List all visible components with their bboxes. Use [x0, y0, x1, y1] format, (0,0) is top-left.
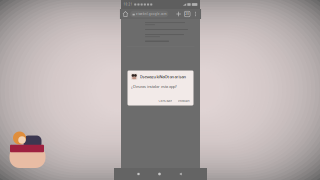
button[interactable]: INSTALAR — [178, 99, 190, 102]
staticText: OsewazukiNaOtonarisan — [139, 74, 186, 79]
staticText: INSTALAR — [178, 99, 190, 102]
button[interactable]: Home — [153, 168, 166, 180]
button[interactable]: New tab — [176, 12, 181, 16]
button[interactable]: Home — [123, 11, 128, 16]
button[interactable]: Back — [174, 168, 187, 180]
button[interactable]: Tabs — [184, 11, 190, 17]
button[interactable]: More options — [193, 11, 198, 17]
staticText: 10:21 — [124, 3, 133, 6]
staticText: eiwebnl.google.com — [136, 12, 166, 16]
button[interactable]: eiwebnl.google.com — [130, 11, 168, 17]
staticText: 20 — [185, 12, 189, 16]
staticText: ¿Deseas instalar esta app? — [131, 84, 177, 89]
staticText: CANCELAR — [158, 99, 172, 102]
button[interactable]: CANCELAR — [158, 99, 172, 102]
button[interactable]: Recent apps — [132, 168, 145, 180]
